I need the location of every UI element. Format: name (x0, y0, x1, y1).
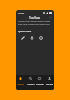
button[interactable]: Profile (49, 16, 52, 19)
button[interactable]: Edit (18, 35, 26, 42)
staticText: 10:24 (18, 11, 25, 14)
button[interactable]: Search (26, 77, 35, 86)
staticText: Profile (46, 83, 53, 86)
button[interactable]: Library (35, 77, 44, 86)
staticText: Home (17, 83, 24, 86)
button[interactable]: Profile (45, 77, 54, 86)
button[interactable]: Record (27, 35, 35, 42)
staticText: Quick links (18, 29, 32, 32)
staticText: Library (36, 83, 44, 86)
staticText: Toolbox (29, 16, 41, 19)
button[interactable]: Share (36, 35, 44, 42)
staticText: Create this talking audio create logo an… (18, 20, 50, 26)
button[interactable]: Toolbox (27, 15, 43, 20)
button[interactable]: Home (16, 77, 25, 86)
staticText: Search (27, 83, 35, 86)
